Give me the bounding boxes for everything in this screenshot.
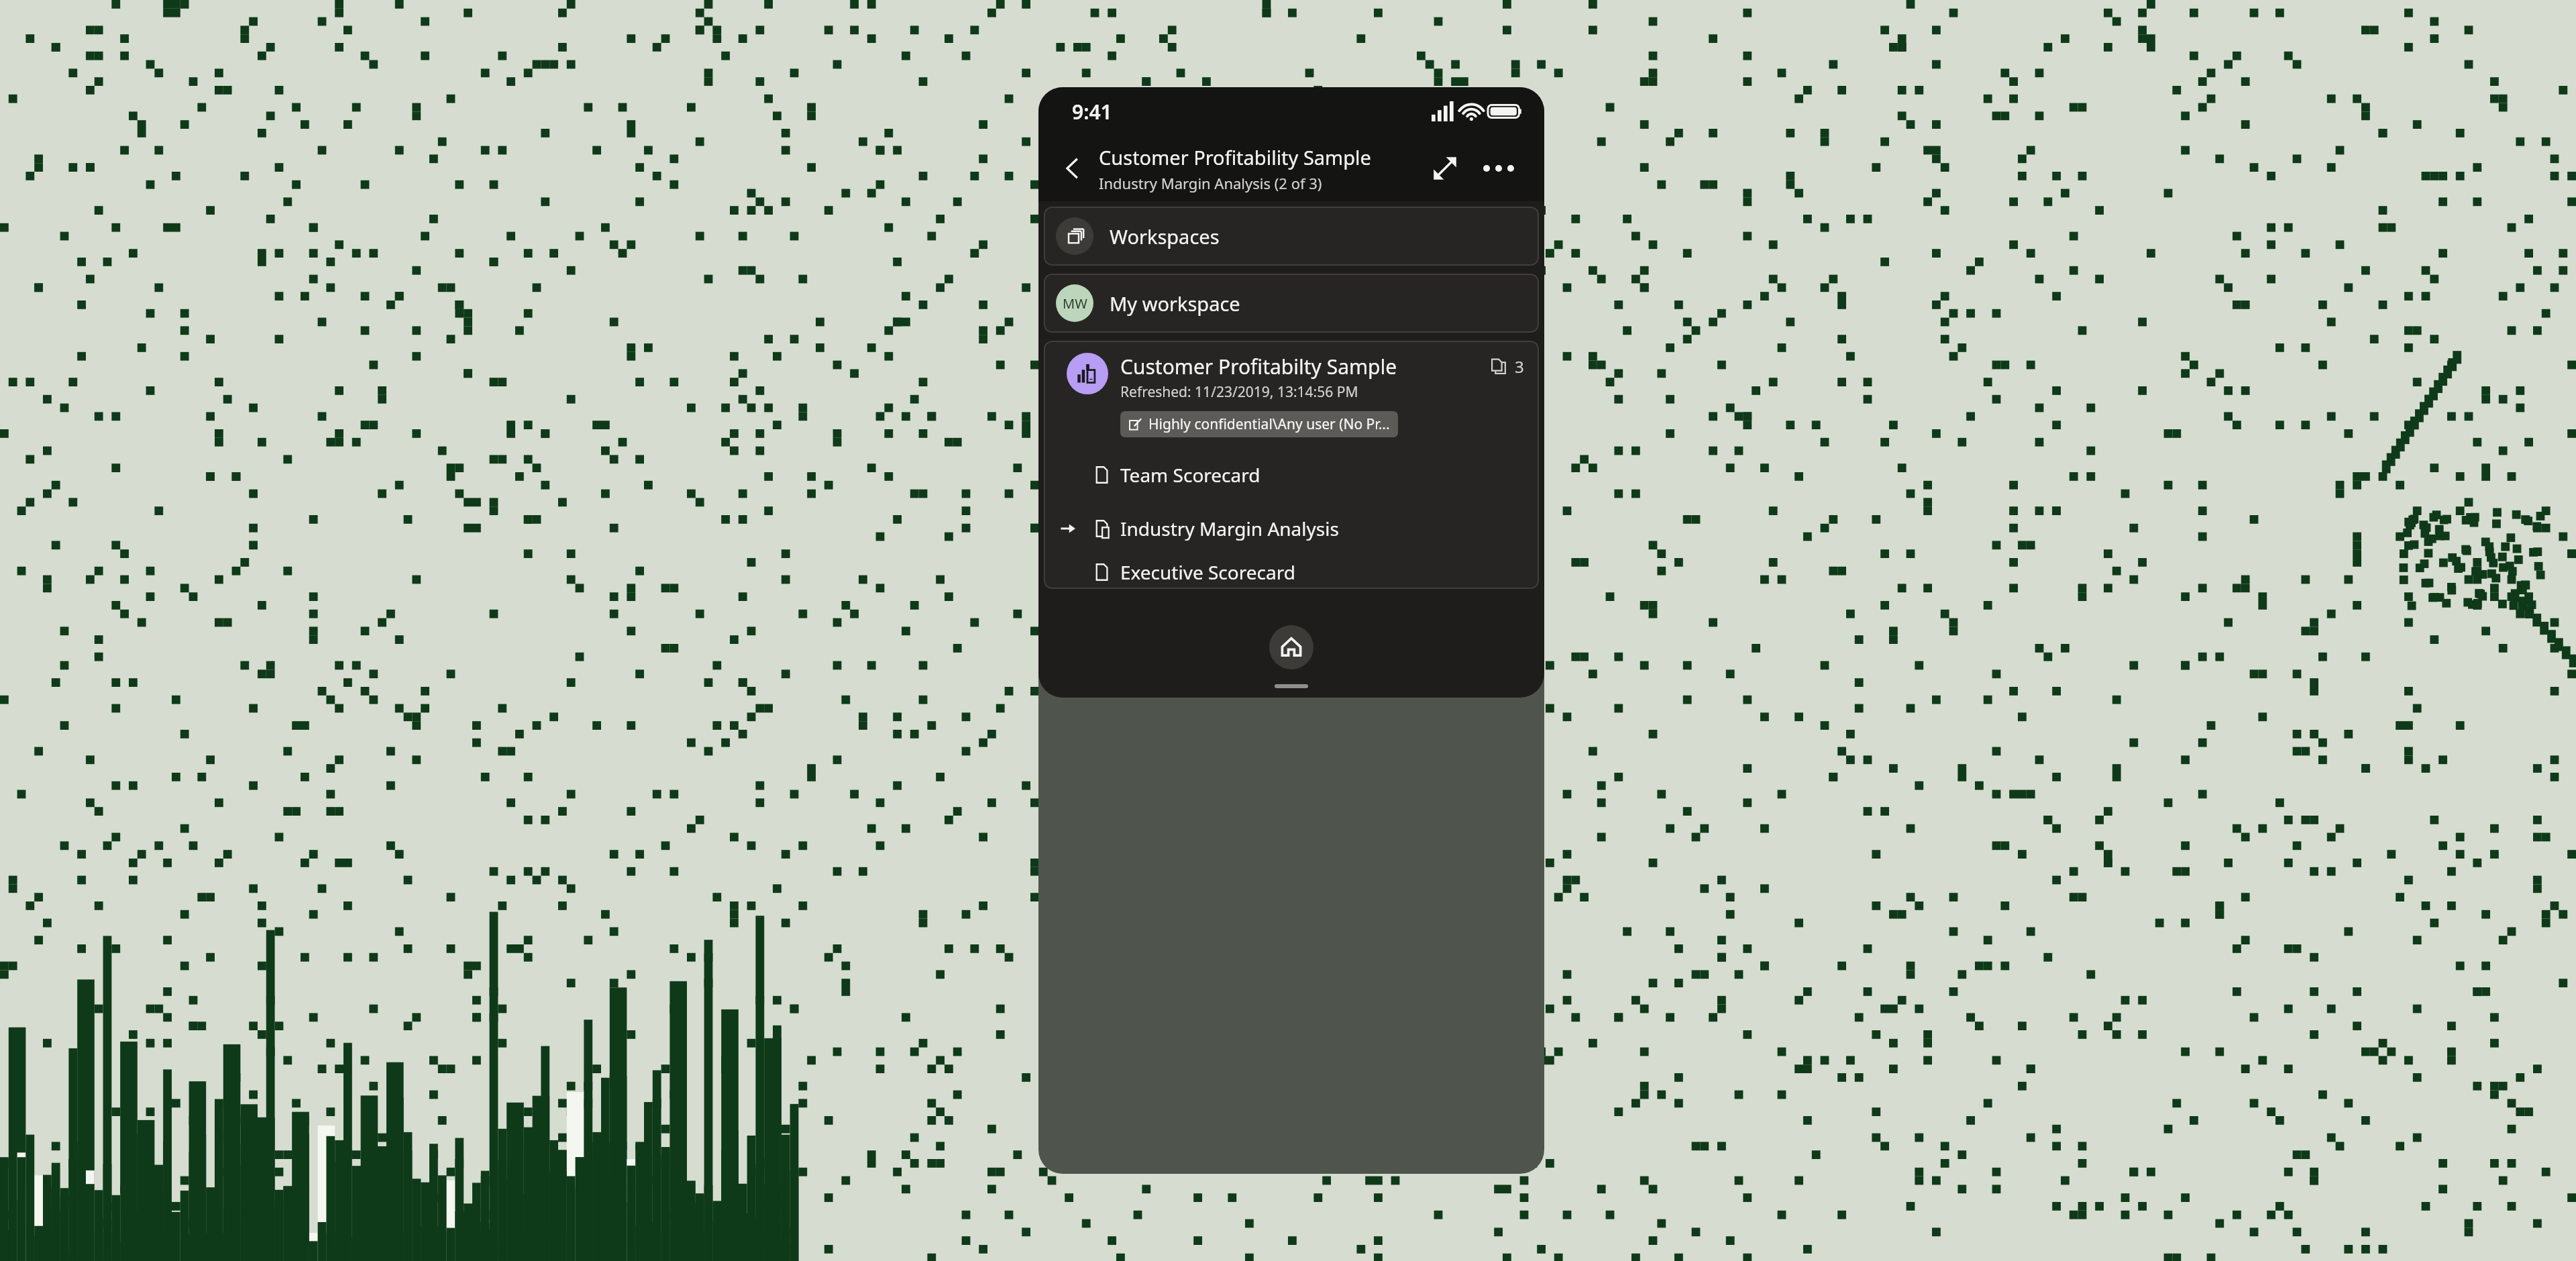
button[interactable]: Customer Profitabilty Sample xyxy=(1044,341,1539,589)
button[interactable]: Team Scorecard xyxy=(1044,448,1539,502)
button[interactable]: MW xyxy=(1044,274,1539,333)
button[interactable]: Highly confidential\Any user (No Pr... xyxy=(1128,415,1390,434)
button[interactable]: Workspaces xyxy=(1044,207,1539,266)
button[interactable]: Full screen xyxy=(1418,142,1472,195)
staticText: 3 xyxy=(1515,355,1524,378)
staticText: Team Scorecard xyxy=(1120,462,1260,488)
button[interactable]: Executive Scorecard xyxy=(1044,555,1539,589)
staticText: Refreshed: 11/23/2019, 13:14:56 PM xyxy=(1120,382,1358,402)
staticText: Customer Profitabilty Sample xyxy=(1120,353,1397,380)
staticText: Highly confidential\Any user (No Pr... xyxy=(1148,415,1390,434)
staticText: Executive Scorecard xyxy=(1120,559,1295,585)
button[interactable]: Home xyxy=(1269,625,1313,669)
staticText: MW xyxy=(1063,294,1087,313)
staticText: Industry Margin Analysis (2 of 3) xyxy=(1099,173,1322,193)
button[interactable]: Back xyxy=(1049,145,1096,192)
staticText: Industry Margin Analysis xyxy=(1120,516,1339,541)
button[interactable]: Industry Margin Analysis xyxy=(1044,502,1539,555)
staticText: 9:41 xyxy=(1072,98,1112,125)
staticText: Workspaces xyxy=(1110,223,1220,250)
staticText: My workspace xyxy=(1110,290,1240,317)
staticText: Customer Profitability Sample xyxy=(1099,144,1371,170)
button[interactable]: More options xyxy=(1472,142,1525,195)
